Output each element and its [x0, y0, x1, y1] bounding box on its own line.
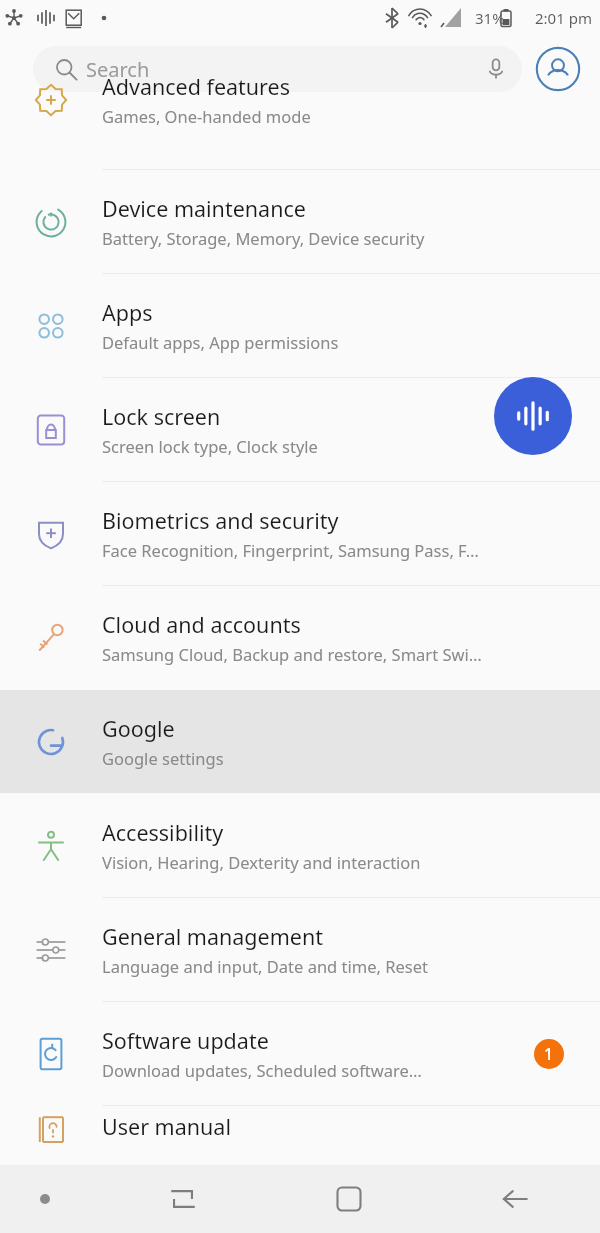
staticText: Lock screen — [102, 402, 221, 431]
button[interactable]: User manual — [0, 1106, 600, 1146]
button[interactable]: Recents — [150, 1166, 216, 1232]
staticText: Apps — [102, 298, 153, 327]
button[interactable]: Google — [0, 690, 600, 793]
staticText: User manual — [102, 1112, 231, 1141]
staticText: 1 — [544, 1043, 554, 1065]
staticText: Language and input, Date and time, Reset — [102, 955, 428, 977]
staticText: Google settings — [102, 747, 224, 769]
button[interactable]: Back — [482, 1166, 548, 1232]
button[interactable]: Search — [33, 46, 522, 92]
staticText: General management — [102, 922, 323, 951]
button[interactable]: Voice search — [476, 49, 516, 89]
staticText: Games, One-handed mode — [102, 105, 311, 127]
staticText: Software update — [102, 1026, 269, 1055]
button[interactable]: Accessibility — [0, 794, 600, 897]
staticText: Biometrics and security — [102, 506, 339, 535]
button[interactable]: Biometrics and security — [0, 482, 600, 585]
staticText: Advanced features — [102, 72, 290, 101]
staticText: Accessibility — [102, 818, 224, 847]
staticText: Search — [86, 56, 150, 83]
button[interactable]: Cloud and accounts — [0, 586, 600, 689]
button[interactable]: Lock screen — [0, 378, 600, 481]
button[interactable]: General management — [0, 898, 600, 1001]
staticText: 31% — [475, 8, 505, 28]
staticText: Samsung Cloud, Backup and restore, Smart… — [102, 643, 482, 665]
staticText: Device maintenance — [102, 194, 306, 223]
button[interactable]: Voice assistant — [494, 377, 572, 455]
button[interactable]: Account — [534, 45, 582, 93]
button[interactable]: Home — [316, 1166, 382, 1232]
button[interactable]: Advanced features — [0, 102, 600, 169]
button[interactable]: Apps — [0, 274, 600, 377]
staticText: Vision, Hearing, Dexterity and interacti… — [102, 851, 421, 873]
staticText: Screen lock type, Clock style — [102, 435, 318, 457]
staticText: Google — [102, 714, 175, 743]
staticText: Battery, Storage, Memory, Device securit… — [102, 227, 425, 249]
staticText: Download updates, Scheduled software… — [102, 1059, 422, 1081]
button[interactable]: Software update — [0, 1002, 600, 1105]
staticText: Cloud and accounts — [102, 610, 301, 639]
button[interactable]: Device maintenance — [0, 170, 600, 273]
staticText: Default apps, App permissions — [102, 331, 339, 353]
staticText: 2:01 pm — [535, 8, 592, 28]
staticText: Face Recognition, Fingerprint, Samsung P… — [102, 539, 479, 561]
